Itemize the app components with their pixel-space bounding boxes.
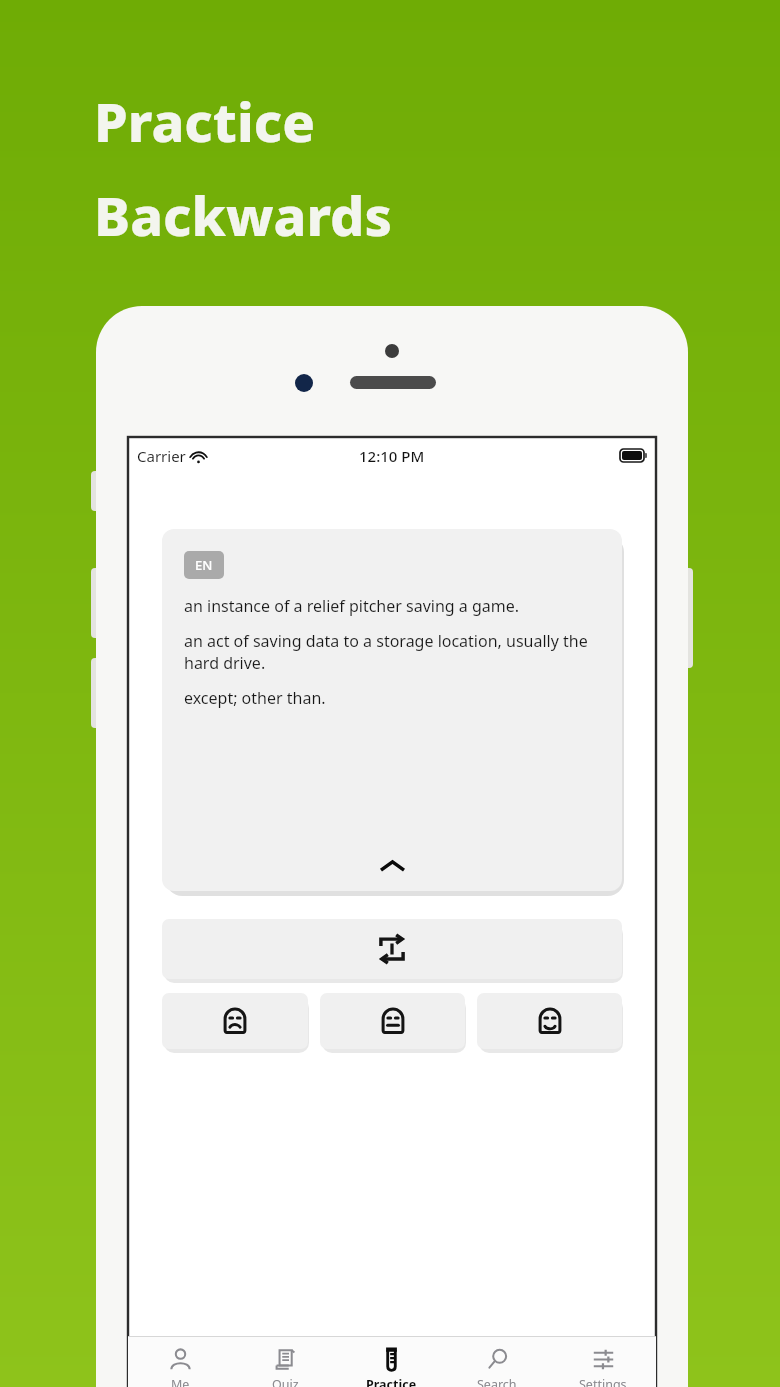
button[interactable]: Settings <box>550 1337 656 1387</box>
staticText: Practice <box>94 84 315 158</box>
button[interactable]: Me <box>128 1337 233 1387</box>
button[interactable]: Medium <box>320 993 465 1049</box>
button[interactable]: Easy <box>477 993 622 1049</box>
staticText: Practice <box>366 1376 417 1387</box>
staticText: Search <box>477 1376 517 1387</box>
staticText: Settings <box>579 1376 627 1387</box>
button[interactable]: EN <box>162 529 622 891</box>
button[interactable]: Collapse <box>370 851 414 881</box>
button[interactable]: Practice <box>338 1337 444 1387</box>
staticText: except; other than. <box>184 687 326 709</box>
staticText: an act of saving data to a storage locat… <box>184 630 602 674</box>
staticText: Quiz <box>272 1376 299 1387</box>
button[interactable]: Hard <box>162 993 308 1049</box>
button[interactable]: Search <box>444 1337 550 1387</box>
staticText: EN <box>195 556 213 574</box>
staticText: an instance of a relief pitcher saving a… <box>184 595 520 617</box>
staticText: Backwards <box>94 178 392 252</box>
staticText: Carrier <box>137 446 186 466</box>
button[interactable]: Quiz <box>233 1337 338 1387</box>
button[interactable]: Swap direction <box>162 919 622 979</box>
staticText: 12:10 PM <box>359 446 425 466</box>
staticText: Me <box>171 1376 190 1387</box>
